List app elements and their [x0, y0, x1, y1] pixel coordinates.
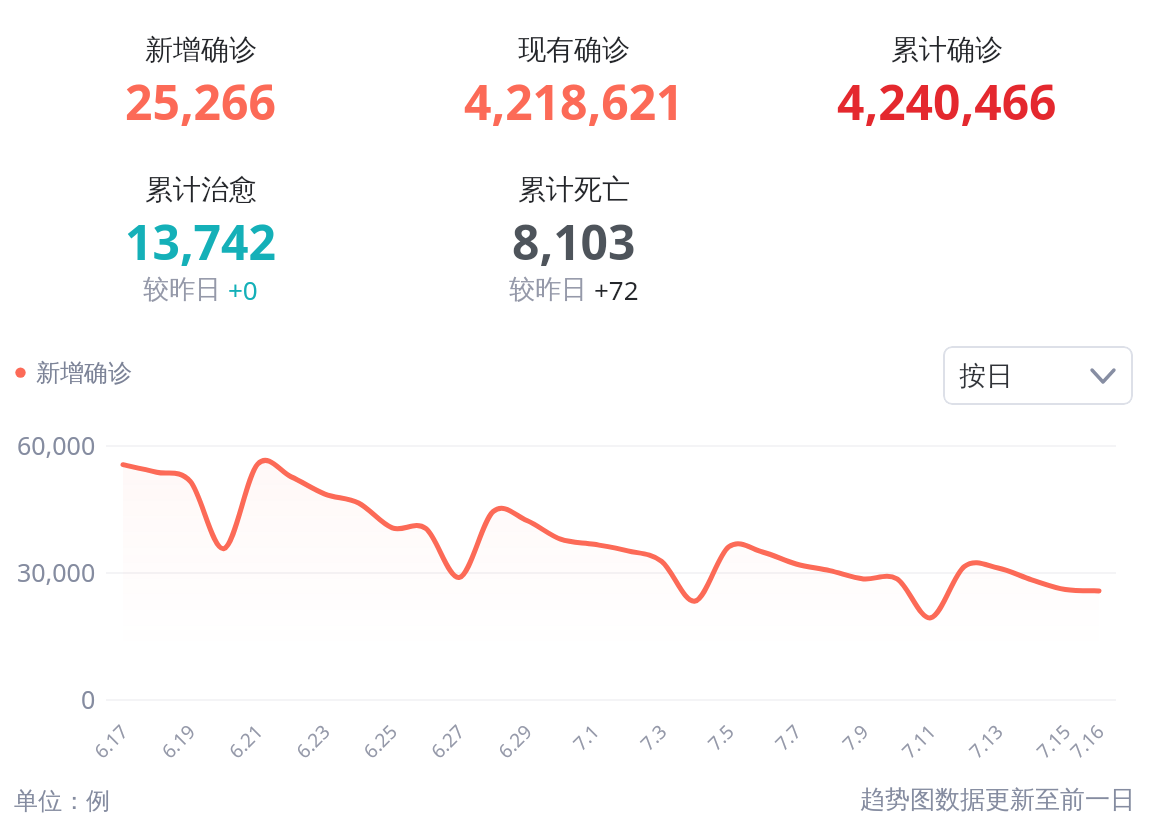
button[interactable]: 新增确诊	[15, 358, 132, 388]
staticText: 累计确诊	[891, 32, 1003, 67]
staticText: +72	[594, 272, 639, 307]
other: 展开时间粒度选项	[1092, 370, 1114, 382]
staticText: 8,103	[512, 209, 636, 274]
staticText: 较昨日	[143, 273, 221, 306]
button[interactable]: 累计治愈	[14, 172, 387, 309]
button[interactable]: 累计死亡	[387, 172, 760, 309]
button[interactable]: 现有确诊	[387, 32, 760, 134]
staticText: 累计治愈	[145, 172, 257, 207]
staticText: 单位：例	[14, 786, 110, 816]
staticText: 新增确诊	[36, 358, 132, 388]
staticText: +0	[228, 272, 258, 307]
button[interactable]: 新增确诊	[14, 32, 387, 134]
staticText: 趋势图数据更新至前一日	[860, 784, 1135, 815]
staticText: 累计死亡	[518, 172, 630, 207]
staticText: 4,240,466	[837, 69, 1057, 134]
staticText: 较昨日	[509, 273, 587, 306]
button[interactable]: 按日	[943, 346, 1133, 405]
staticText: 按日	[959, 359, 1013, 393]
staticText: 25,266	[125, 69, 276, 134]
staticText: 现有确诊	[518, 32, 630, 67]
staticText: 4,218,621	[464, 69, 684, 134]
staticText: 13,742	[125, 209, 276, 274]
staticText: 新增确诊	[145, 32, 257, 67]
button[interactable]: 累计确诊	[760, 32, 1133, 134]
